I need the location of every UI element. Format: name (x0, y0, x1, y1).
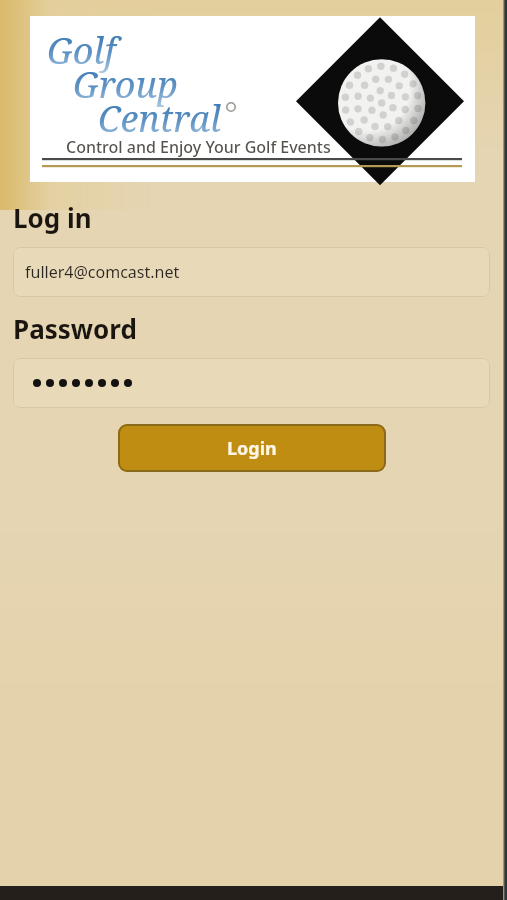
button[interactable] (13, 358, 490, 408)
staticText: Password (13, 311, 137, 346)
staticText: Log in (13, 200, 92, 235)
staticText: Control and Enjoy Your Golf Events (66, 136, 331, 158)
button[interactable]: fuller4@comcast.net (13, 247, 490, 297)
staticText: Central (98, 94, 222, 143)
staticText: fuller4@comcast.net (25, 261, 180, 283)
staticText: Golf (47, 26, 116, 75)
staticText: Login (227, 436, 277, 461)
staticText: Group (73, 60, 178, 109)
button[interactable]: Login (118, 424, 386, 472)
